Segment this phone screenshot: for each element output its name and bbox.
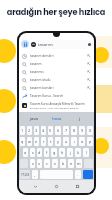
button[interactable]: k: [75, 148, 81, 157]
button[interactable]: n: [68, 159, 74, 168]
button[interactable]: tasarım okulu: [22, 76, 91, 84]
button[interactable]: 4: [41, 126, 46, 135]
staticText: t: [50, 139, 52, 144]
staticText: l: [86, 150, 87, 155]
button[interactable]: t: [48, 137, 53, 146]
button[interactable]: 9: [79, 126, 85, 135]
staticText: j: [70, 150, 71, 155]
staticText: tasarım: [30, 62, 42, 66]
button[interactable]: j: [68, 112, 91, 125]
button[interactable]: x: [37, 159, 42, 168]
staticText: hava: [52, 116, 62, 122]
button[interactable]: tasarım dersleri: [22, 52, 91, 60]
staticText: 2: [28, 128, 31, 133]
staticText: u: [65, 139, 68, 144]
staticText: p: [89, 139, 92, 144]
button[interactable]: c: [44, 159, 50, 168]
button[interactable]: Back: [31, 182, 40, 191]
staticText: Tasarım Kursu - Search: [30, 94, 64, 98]
button[interactable]: z: [30, 159, 35, 168]
button[interactable]: 0: [87, 126, 93, 135]
staticText: tasarım kursları: [30, 86, 54, 90]
staticText: d: [38, 150, 41, 155]
button[interactable]: p: [87, 137, 93, 146]
staticText: w: [28, 139, 31, 144]
staticText: j: [79, 116, 81, 122]
button[interactable]: tasarım: [22, 60, 91, 68]
button[interactable]: Recents: [73, 182, 82, 191]
button[interactable]: o: [79, 137, 85, 146]
button[interactable]: 1: [20, 126, 25, 135]
staticText: kurslar.com.tr › Yeni Yüz Mimarlık Tasar…: [30, 106, 79, 109]
button[interactable]: f: [44, 148, 49, 157]
staticText: a: [24, 150, 27, 155]
button[interactable]: y: [55, 137, 61, 146]
staticText: c: [46, 161, 48, 166]
button[interactable]: java: [22, 112, 45, 125]
button[interactable]: ı: [71, 137, 77, 146]
staticText: 4: [42, 128, 45, 133]
staticText: s: [32, 150, 34, 155]
staticText: ,: [34, 172, 36, 177]
button[interactable]: Tasarım Kursu - Search: [22, 92, 91, 100]
staticText: b: [62, 161, 65, 166]
button[interactable]: 8: [71, 126, 77, 135]
staticText: y: [57, 139, 59, 144]
button[interactable]: d: [37, 148, 42, 157]
button[interactable]: 5: [48, 126, 53, 135]
button[interactable]: .: [75, 170, 81, 179]
button[interactable]: 6: [55, 126, 61, 135]
button[interactable]: b: [60, 159, 66, 168]
button[interactable]: m: [76, 159, 82, 168]
staticText: g: [53, 150, 56, 155]
staticText: f: [46, 150, 48, 155]
staticText: 9: [81, 128, 84, 133]
other: Clear: [88, 43, 91, 46]
button[interactable]: g: [51, 148, 57, 157]
button[interactable]: u: [63, 137, 69, 146]
button[interactable]: v: [52, 159, 58, 168]
staticText: ?123: [21, 172, 30, 177]
staticText: 1: [21, 128, 24, 133]
staticText: q: [21, 139, 24, 144]
staticText: tasarım okulu: [30, 78, 51, 82]
button[interactable]: r: [41, 137, 46, 146]
button[interactable]: l: [83, 148, 89, 157]
button[interactable]: a: [23, 148, 28, 157]
button[interactable]: Tasarım Kursu Anasayfa Mimarlık Tasarım: [22, 100, 92, 110]
button[interactable]: tasarım: [31, 40, 91, 49]
button[interactable]: e: [34, 137, 39, 146]
button[interactable]: q: [20, 137, 25, 146]
button[interactable]: Profile: [21, 40, 29, 48]
staticText: Tasarım Kursu Anasayfa Mimarlık Tasarım: [30, 102, 85, 106]
button[interactable]: hava: [45, 112, 68, 125]
staticText: n: [70, 161, 73, 166]
staticText: aradığın her şeye hızlıca: [0, 6, 112, 17]
button[interactable]: 2: [27, 126, 32, 135]
button[interactable]: 3: [34, 126, 39, 135]
button[interactable]: w: [27, 137, 32, 146]
staticText: 7: [65, 128, 68, 133]
staticText: 3: [35, 128, 38, 133]
button[interactable]: j: [67, 148, 73, 157]
button[interactable]: 7: [63, 126, 69, 135]
button[interactable]: Enter: [83, 170, 93, 179]
staticText: o: [81, 139, 84, 144]
staticText: m: [77, 161, 81, 166]
staticText: 6: [57, 128, 60, 133]
button[interactable]: s: [30, 148, 35, 157]
button[interactable]: ?123: [20, 170, 30, 179]
button[interactable]: tasarım kursları: [22, 84, 91, 92]
staticText: r: [43, 139, 45, 144]
staticText: .: [77, 172, 79, 177]
button[interactable]: tasarımcı: [22, 68, 91, 76]
button[interactable]: ,: [32, 170, 38, 179]
button[interactable]: h: [59, 148, 65, 157]
button[interactable]: Home: [52, 182, 61, 191]
staticText: tasarımcı: [30, 70, 44, 74]
staticText: 5: [49, 128, 52, 133]
